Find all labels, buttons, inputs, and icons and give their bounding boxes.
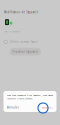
button[interactable]: Définir comme favori: [0, 39, 40, 44]
staticText: Visualiser l'appareil: [12, 50, 38, 53]
staticText: Associer: [42, 106, 53, 109]
button[interactable]: Visualiser l'appareil: [9, 48, 41, 55]
button[interactable]: Annuler: [7, 105, 19, 110]
staticText: nom de l'appareil: [4, 30, 21, 33]
staticText: Pour vous connecter à cet appareil, vous…: [7, 93, 53, 100]
button[interactable]: Associer: [42, 105, 53, 110]
staticText: Annuler: [7, 106, 19, 109]
staticText: Définir comme favori: [9, 40, 37, 44]
staticText: Modification de l'appareil: [3, 10, 38, 14]
